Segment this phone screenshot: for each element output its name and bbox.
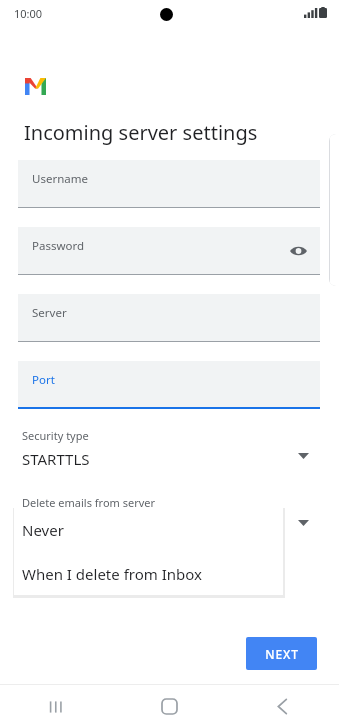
- staticText: Username: [32, 171, 88, 187]
- staticText: Port: [32, 372, 55, 388]
- staticText: Never: [22, 520, 64, 540]
- button[interactable]: Server: [18, 294, 320, 344]
- button[interactable]: Security type: [18, 427, 320, 479]
- button[interactable]: Username: [18, 160, 320, 210]
- button[interactable]: Home: [113, 685, 226, 728]
- staticText: Delete emails from server: [22, 495, 156, 510]
- staticText: Password: [32, 238, 85, 254]
- button[interactable]: Port: [18, 361, 320, 411]
- staticText: When I delete from Inbox: [22, 564, 202, 584]
- other: Open dropdown: [296, 451, 310, 461]
- button[interactable]: Show password: [286, 239, 310, 263]
- button[interactable]: Delete emails from server: [18, 494, 320, 546]
- staticText: Incoming server settings: [24, 119, 258, 146]
- staticText: STARTTLS: [22, 449, 90, 469]
- button[interactable]: Back: [226, 685, 339, 728]
- staticText: Never: [22, 516, 64, 536]
- staticText: NEXT: [265, 646, 299, 662]
- staticText: Security type: [22, 428, 89, 443]
- button[interactable]: Password: [18, 227, 320, 277]
- button[interactable]: When I delete from Inbox: [14, 552, 283, 595]
- button[interactable]: NEXT: [246, 637, 317, 670]
- staticText: Server: [32, 305, 67, 321]
- staticText: 10:00: [14, 6, 43, 21]
- button[interactable]: Recents: [0, 685, 113, 728]
- other: Open dropdown: [296, 518, 310, 528]
- button[interactable]: Never: [14, 508, 283, 552]
